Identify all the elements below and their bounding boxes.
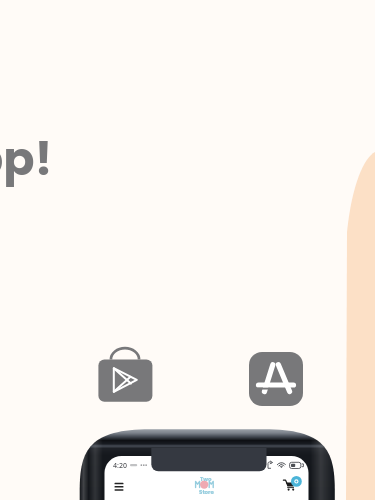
staticText: 4:20 [113,461,127,471]
button[interactable]: Get it on Google Play [97,346,153,404]
staticText: pp! [0,127,53,191]
staticText: Store [199,488,214,496]
button[interactable]: Download on the App Store [249,352,303,406]
staticText: Two [200,475,212,483]
